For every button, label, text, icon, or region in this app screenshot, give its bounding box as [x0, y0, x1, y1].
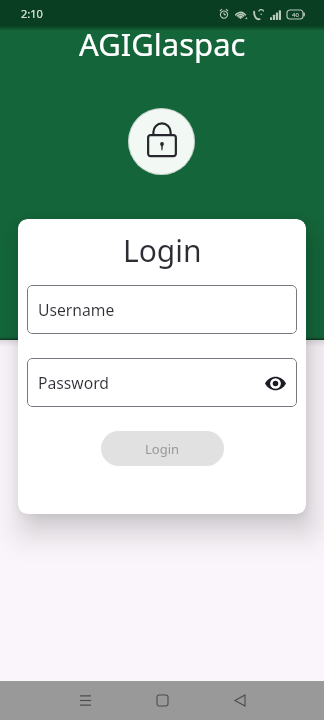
button[interactable]: Password: [27, 358, 297, 407]
staticText: Password: [38, 372, 109, 393]
button[interactable]: Username: [27, 285, 297, 334]
staticText: 40: [292, 11, 299, 19]
button[interactable]: Show password: [262, 370, 288, 396]
button[interactable]: Login: [101, 431, 224, 466]
staticText: Login: [123, 230, 202, 271]
staticText: 2:10: [21, 6, 43, 21]
button[interactable]: Back: [220, 681, 260, 720]
staticText: Login: [145, 440, 180, 458]
button[interactable]: Home: [142, 681, 182, 720]
staticText: Username: [38, 299, 115, 320]
button[interactable]: Recent apps: [65, 681, 105, 720]
staticText: AGIGlaspac: [79, 23, 246, 65]
